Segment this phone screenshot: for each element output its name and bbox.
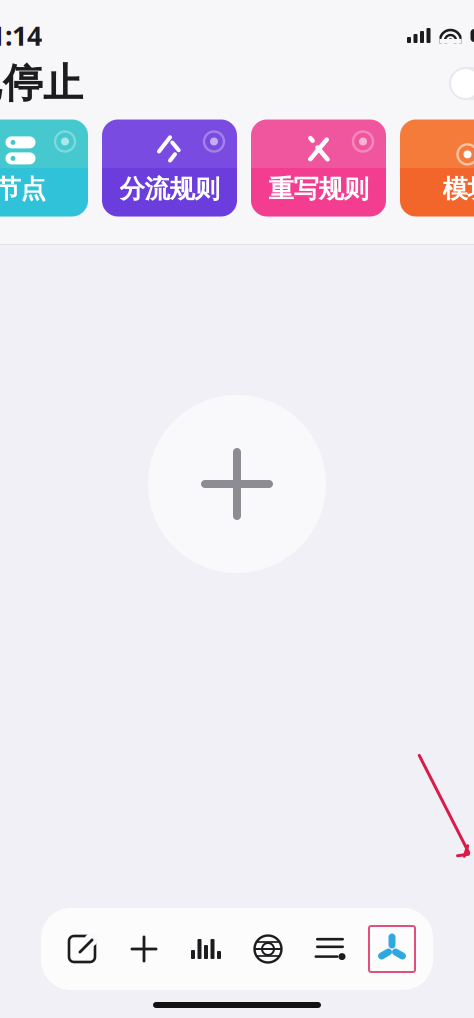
button[interactable]: 分流规则 [102,119,237,216]
button[interactable]: 新建 [113,918,175,980]
button[interactable]: 更多 [361,918,423,980]
button[interactable]: 节点 [0,119,88,216]
staticText: 11:14 [0,18,42,53]
button[interactable]: 流量统计 [175,918,237,980]
button[interactable]: 重写规则 [251,119,386,216]
button[interactable]: 编辑 [51,918,113,980]
staticText: 节点 [0,173,45,204]
button[interactable]: 启动开关 [449,67,474,100]
button[interactable]: 规则 [299,918,361,980]
staticText: 分流规则 [119,173,219,204]
button[interactable]: 网络 [237,918,299,980]
staticText: 已停止 [0,59,83,108]
button[interactable]: 添加配置 [148,395,326,573]
button[interactable]: 模块 [400,119,474,216]
staticText: 重写规则 [268,173,368,204]
staticText: 模块 [442,173,474,204]
